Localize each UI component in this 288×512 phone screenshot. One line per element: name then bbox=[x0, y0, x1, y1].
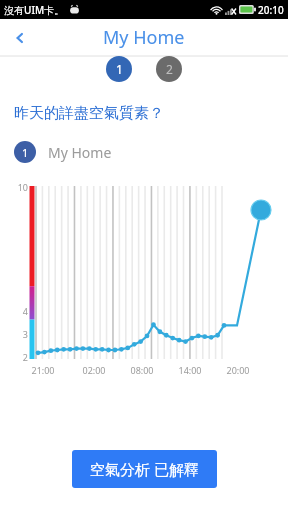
staticText: 昨天的詳盡空氣質素？ bbox=[14, 104, 164, 123]
staticText: 08:00 bbox=[122, 364, 162, 376]
staticText: 10 bbox=[10, 181, 28, 193]
staticText: 14:00 bbox=[170, 364, 210, 376]
staticText: 4 bbox=[10, 305, 28, 317]
staticText: 1 bbox=[22, 145, 29, 160]
staticText: 沒有UIM卡。 bbox=[4, 3, 65, 17]
staticText: 3 bbox=[10, 328, 28, 340]
staticText: 21:00 bbox=[26, 364, 60, 376]
button[interactable]: 空氣分析 已解釋 bbox=[72, 450, 217, 488]
staticText: 2 bbox=[166, 61, 173, 77]
button[interactable]: 1 bbox=[14, 141, 288, 163]
button[interactable]: 1 bbox=[106, 56, 132, 82]
staticText: 02:00 bbox=[74, 364, 114, 376]
staticText: 1 bbox=[116, 61, 123, 77]
staticText: My Home bbox=[48, 143, 112, 162]
button[interactable]: Back bbox=[0, 19, 40, 56]
staticText: 20:10 bbox=[258, 3, 284, 17]
staticText: 2 bbox=[10, 351, 28, 363]
staticText: My Home bbox=[103, 25, 185, 50]
staticText: 20:00 bbox=[218, 364, 258, 376]
staticText: 空氣分析 已解釋 bbox=[90, 459, 199, 479]
button[interactable]: 2 bbox=[156, 56, 182, 82]
